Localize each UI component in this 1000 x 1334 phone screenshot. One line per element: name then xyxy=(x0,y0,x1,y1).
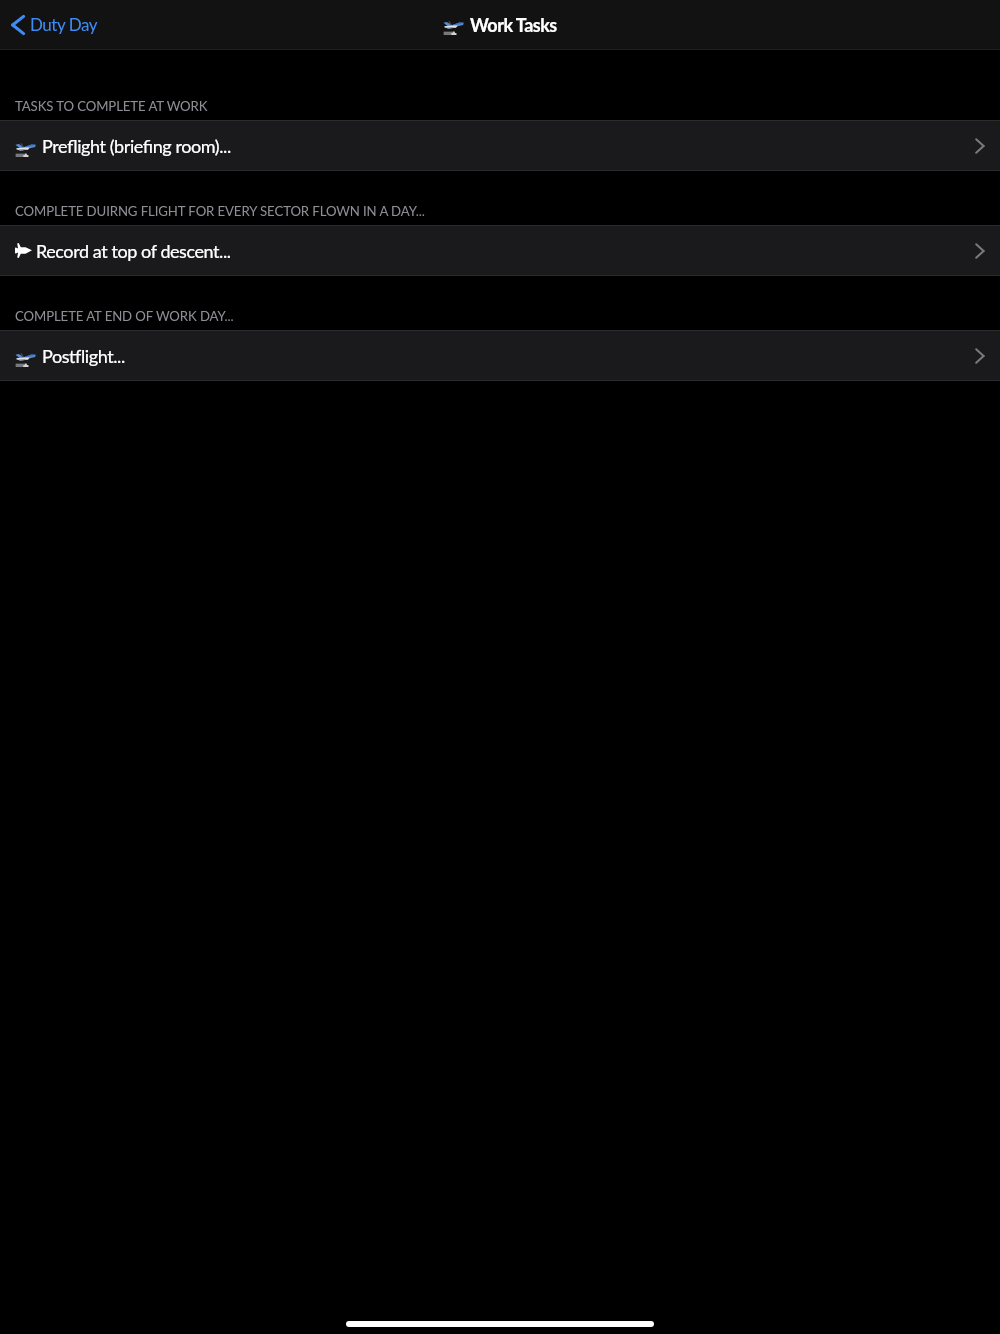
staticText: COMPLETE AT END OF WORK DAY... xyxy=(15,308,234,324)
staticText: COMPLETE DUIRNG FLIGHT FOR EVERY SECTOR … xyxy=(15,203,425,219)
staticText: Preflight (briefing room)... xyxy=(42,135,231,157)
button[interactable]: Record at top of descent... xyxy=(0,226,1000,275)
staticText: Postflight... xyxy=(42,345,125,367)
staticText: Work Tasks xyxy=(470,14,557,36)
staticText: TASKS TO COMPLETE AT WORK xyxy=(15,98,208,114)
button[interactable]: Back to Duty Day xyxy=(11,13,98,37)
button[interactable]: Postflight... xyxy=(0,331,1000,380)
staticText: Duty Day xyxy=(30,14,98,34)
button[interactable]: Preflight (briefing room)... xyxy=(0,121,1000,170)
staticText: Record at top of descent... xyxy=(36,240,231,262)
